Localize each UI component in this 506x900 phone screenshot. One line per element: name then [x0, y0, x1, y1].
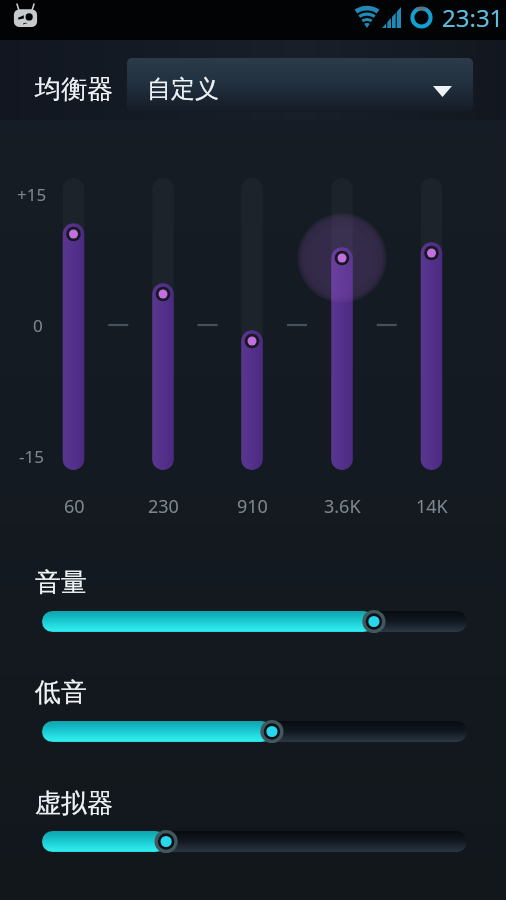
- staticText: 音量: [35, 566, 87, 599]
- button[interactable]: 虚拟器: [30, 786, 476, 860]
- staticText: +15: [17, 183, 47, 206]
- button[interactable]: 低音: [30, 675, 476, 750]
- button[interactable]: 音量: [30, 565, 476, 640]
- staticText: 0: [33, 314, 43, 337]
- staticText: 自定义: [147, 74, 219, 104]
- staticText: 23:31: [442, 1, 504, 34]
- other: CyanogenMod: [11, 2, 40, 29]
- staticText: 14K: [416, 494, 448, 518]
- staticText: 3.6K: [324, 494, 361, 518]
- button[interactable]: 自定义: [127, 58, 473, 112]
- staticText: 230: [148, 494, 179, 518]
- staticText: 60: [64, 494, 85, 518]
- staticText: 虚拟器: [35, 787, 113, 820]
- staticText: 均衡器: [35, 73, 113, 106]
- staticText: -15: [19, 445, 44, 468]
- staticText: 低音: [35, 676, 87, 709]
- staticText: 910: [237, 494, 268, 518]
